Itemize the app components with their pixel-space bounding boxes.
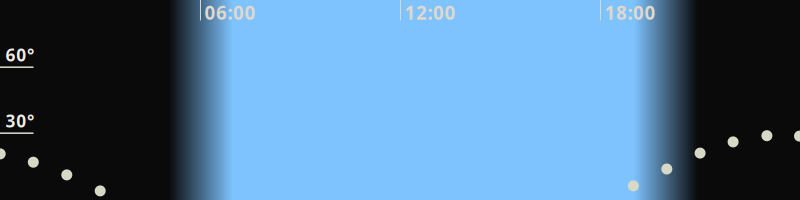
staticText: 30° bbox=[5, 109, 34, 132]
staticText: 18:00 bbox=[605, 0, 656, 25]
staticText: 06:00 bbox=[205, 0, 256, 25]
staticText: 12:00 bbox=[405, 0, 456, 25]
button[interactable]: Sun and moon elevation chart bbox=[0, 0, 800, 200]
staticText: 60° bbox=[5, 43, 34, 66]
